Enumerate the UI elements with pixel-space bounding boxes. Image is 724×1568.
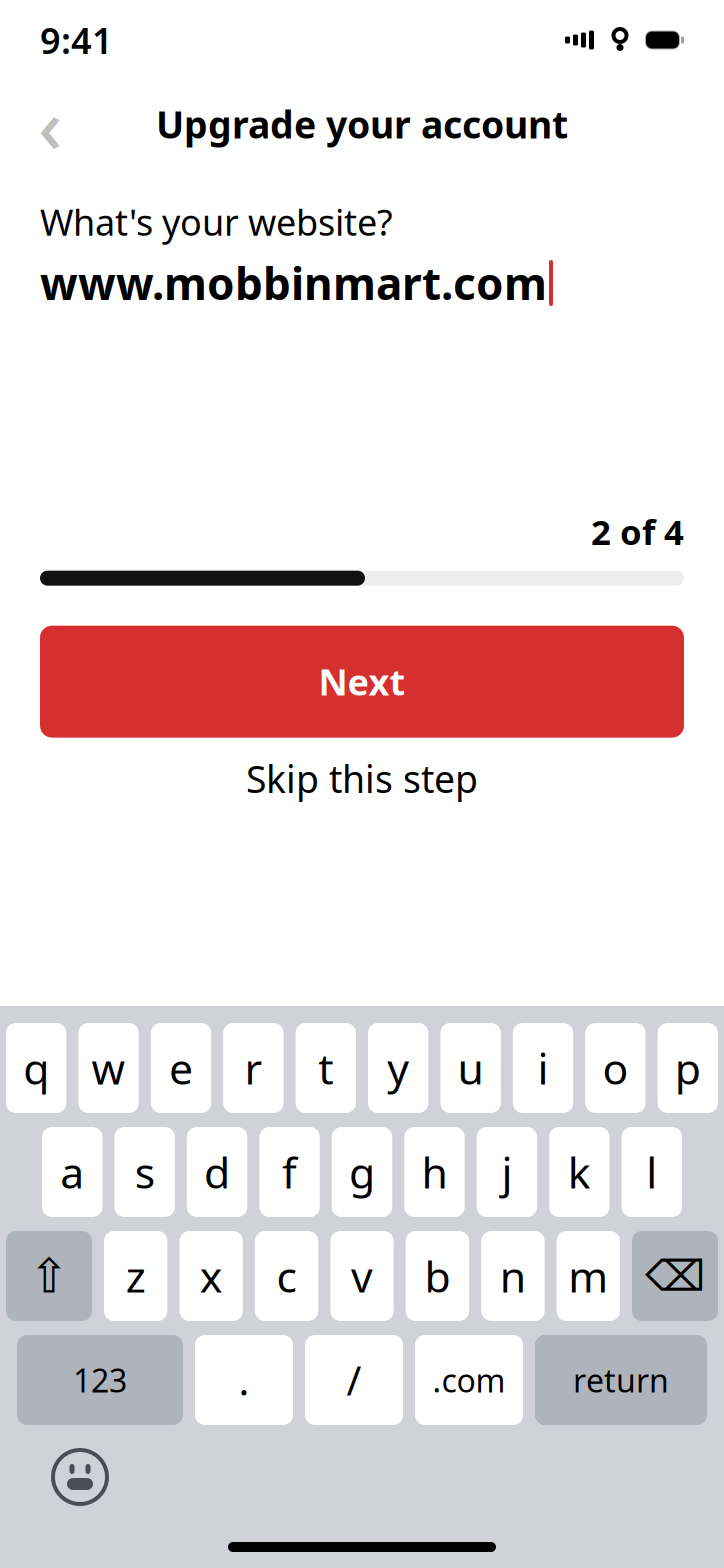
button[interactable]: w xyxy=(78,1023,139,1113)
staticText: . xyxy=(238,1353,249,1406)
staticText: r xyxy=(244,1040,262,1096)
staticText: v xyxy=(351,1248,373,1304)
button[interactable]: t xyxy=(296,1023,356,1113)
button[interactable]: v xyxy=(330,1231,394,1321)
staticText: y xyxy=(387,1040,409,1096)
staticText: x xyxy=(200,1248,223,1304)
button[interactable]: q xyxy=(6,1023,66,1113)
button[interactable]: Back xyxy=(22,96,78,152)
staticText: q xyxy=(23,1040,49,1096)
button[interactable]: b xyxy=(406,1231,469,1321)
button[interactable]: return xyxy=(535,1335,707,1425)
staticText: ⇧ xyxy=(29,1249,69,1303)
staticText: n xyxy=(500,1248,526,1304)
button[interactable]: k xyxy=(549,1127,609,1217)
staticText: www.mobbinmart.com xyxy=(40,254,547,312)
button[interactable]: i xyxy=(513,1023,573,1113)
button[interactable]: a xyxy=(42,1127,102,1217)
staticText: k xyxy=(568,1144,591,1200)
button[interactable]: e xyxy=(151,1023,211,1113)
button[interactable]: 123 xyxy=(17,1335,183,1425)
button[interactable]: r xyxy=(223,1023,284,1113)
button[interactable]: s xyxy=(114,1127,175,1217)
staticText: c xyxy=(277,1248,297,1304)
staticText: 9:41 xyxy=(40,16,113,64)
staticText: return xyxy=(573,1359,669,1401)
staticText: t xyxy=(318,1040,333,1096)
staticText: d xyxy=(204,1144,230,1200)
button[interactable]: .com xyxy=(415,1335,523,1425)
button[interactable]: j xyxy=(477,1127,537,1217)
staticText: 2 of 4 xyxy=(591,509,684,555)
staticText: i xyxy=(537,1040,548,1096)
staticText: Upgrade your account xyxy=(156,99,568,149)
button[interactable]: . xyxy=(195,1335,293,1425)
staticText: What's your website? xyxy=(40,198,393,246)
staticText: s xyxy=(135,1144,155,1200)
button[interactable]: n xyxy=(481,1231,544,1321)
staticText: .com xyxy=(432,1359,505,1401)
staticText: a xyxy=(60,1144,84,1200)
staticText: z xyxy=(126,1248,146,1304)
staticText: l xyxy=(646,1144,657,1200)
staticText: j xyxy=(501,1144,512,1200)
staticText: Skip this step xyxy=(246,754,478,803)
staticText: b xyxy=(424,1248,450,1304)
button[interactable]: Emoji xyxy=(48,1445,112,1509)
staticText: ⌫ xyxy=(645,1252,705,1300)
staticText: ‹ xyxy=(38,74,62,174)
button[interactable]: y xyxy=(368,1023,428,1113)
button[interactable]: u xyxy=(440,1023,501,1113)
button[interactable]: g xyxy=(332,1127,392,1217)
staticText: o xyxy=(602,1040,628,1096)
button[interactable]: d xyxy=(187,1127,247,1217)
button[interactable]: o xyxy=(585,1023,646,1113)
staticText: g xyxy=(349,1144,375,1200)
button[interactable]: / xyxy=(305,1335,403,1425)
staticText: p xyxy=(675,1040,701,1096)
button[interactable]: x xyxy=(179,1231,243,1321)
staticText: e xyxy=(169,1040,193,1096)
staticText: 123 xyxy=(73,1359,127,1401)
staticText: f xyxy=(282,1144,297,1200)
button[interactable]: z xyxy=(104,1231,167,1321)
button[interactable]: Shift xyxy=(6,1231,92,1321)
button[interactable]: Delete xyxy=(632,1231,718,1321)
button[interactable]: p xyxy=(658,1023,718,1113)
button[interactable]: Skip this step xyxy=(40,748,684,810)
button[interactable]: h xyxy=(404,1127,465,1217)
staticText: / xyxy=(346,1353,361,1406)
staticText: Next xyxy=(318,658,405,705)
button[interactable]: m xyxy=(557,1231,620,1321)
staticText: w xyxy=(92,1040,126,1096)
staticText: u xyxy=(458,1040,484,1096)
button[interactable]: c xyxy=(255,1231,318,1321)
button[interactable]: f xyxy=(259,1127,320,1217)
button[interactable]: l xyxy=(622,1127,682,1217)
staticText: h xyxy=(421,1144,447,1200)
button[interactable]: Next xyxy=(40,626,684,738)
staticText: m xyxy=(568,1248,608,1304)
